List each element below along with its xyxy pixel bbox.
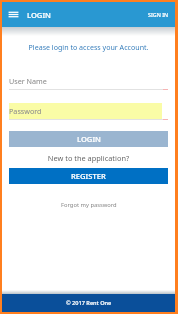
staticText: SIGN IN (148, 11, 169, 18)
button[interactable]: LOGIN (9, 131, 168, 147)
staticText: LOGIN (77, 134, 101, 144)
staticText: New to the application? (9, 153, 168, 163)
button[interactable]: SIGN IN (145, 8, 172, 21)
button[interactable]: Forgot my password (57, 199, 121, 211)
staticText: © 2017 Rent One (66, 299, 112, 307)
staticText: LOGIN (27, 10, 51, 20)
button[interactable]: Menu (7, 8, 20, 21)
staticText: User Name (9, 76, 47, 86)
button[interactable]: REGISTER (9, 168, 168, 184)
staticText: REGISTER (71, 171, 106, 181)
staticText: Password (9, 106, 42, 116)
staticText: Please login to access your Account. (9, 42, 168, 52)
staticText: Forgot my password (61, 201, 117, 209)
